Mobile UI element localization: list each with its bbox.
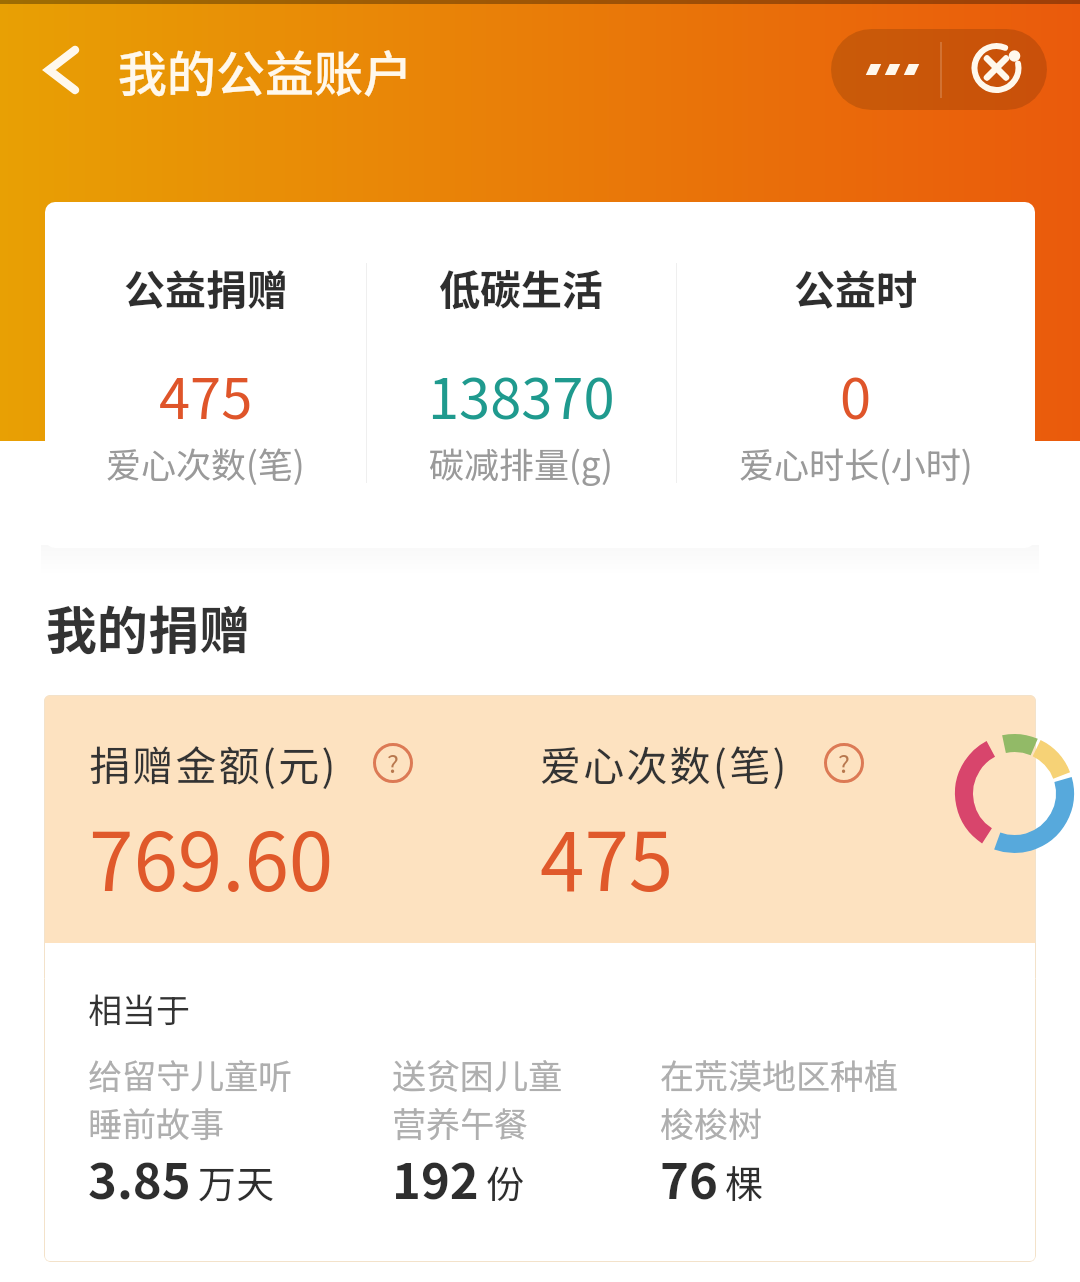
button[interactable]: 爱心次数(笔) (540, 695, 990, 943)
staticText: 送贫困儿童 营养午餐 (392, 1050, 562, 1147)
staticText: 138370 (428, 354, 615, 435)
staticText: 475 (159, 354, 253, 435)
staticText: 我的捐赠 (46, 590, 251, 664)
staticText: 公益时 (794, 257, 917, 316)
staticText: ? (838, 744, 850, 780)
staticText: 相当于 (88, 984, 190, 1033)
staticText: 给留守儿童听 睡前故事 (88, 1050, 292, 1147)
staticText: 475 (540, 798, 674, 914)
button[interactable]: 在荒漠地区种植 梭梭树 (660, 1050, 960, 1230)
button[interactable]: Back (22, 32, 98, 108)
staticText: ? (387, 744, 399, 780)
staticText: 769.60 (89, 798, 334, 914)
staticText: 爱心次数(笔) (540, 733, 789, 792)
staticText: 捐赠金额(元) (89, 733, 338, 792)
button[interactable]: Help (373, 743, 413, 783)
staticText: 份 (486, 1154, 525, 1209)
button[interactable]: 公益捐赠 (45, 202, 366, 548)
button[interactable]: 捐赠金额(元) (89, 695, 539, 943)
staticText: 爱心次数(笔) (106, 437, 305, 488)
staticText: 低碳生活 (439, 257, 603, 316)
staticText: 0 (840, 354, 872, 435)
button[interactable]: 给留守儿童听 睡前故事 (88, 1050, 388, 1230)
staticText: 我的公益账户 (118, 35, 413, 106)
staticText: 公益捐赠 (124, 257, 288, 316)
staticText: 爱心时长(小时) (739, 437, 973, 488)
button[interactable]: 低碳生活 (366, 202, 676, 548)
staticText: 3.85 (88, 1142, 191, 1213)
staticText: 在荒漠地区种植 梭梭树 (660, 1050, 898, 1147)
staticText: 碳减排量(g) (429, 437, 613, 488)
staticText: 棵 (725, 1154, 764, 1209)
button[interactable]: 公益时 (676, 202, 1035, 548)
staticText: 76 (660, 1142, 718, 1213)
button[interactable]: Help (824, 743, 864, 783)
button[interactable]: 送贫困儿童 营养午餐 (392, 1050, 692, 1230)
button[interactable]: More (831, 29, 940, 110)
staticText: 万天 (198, 1154, 275, 1209)
button[interactable]: Close (942, 29, 1047, 110)
staticText: 192 (392, 1142, 479, 1213)
